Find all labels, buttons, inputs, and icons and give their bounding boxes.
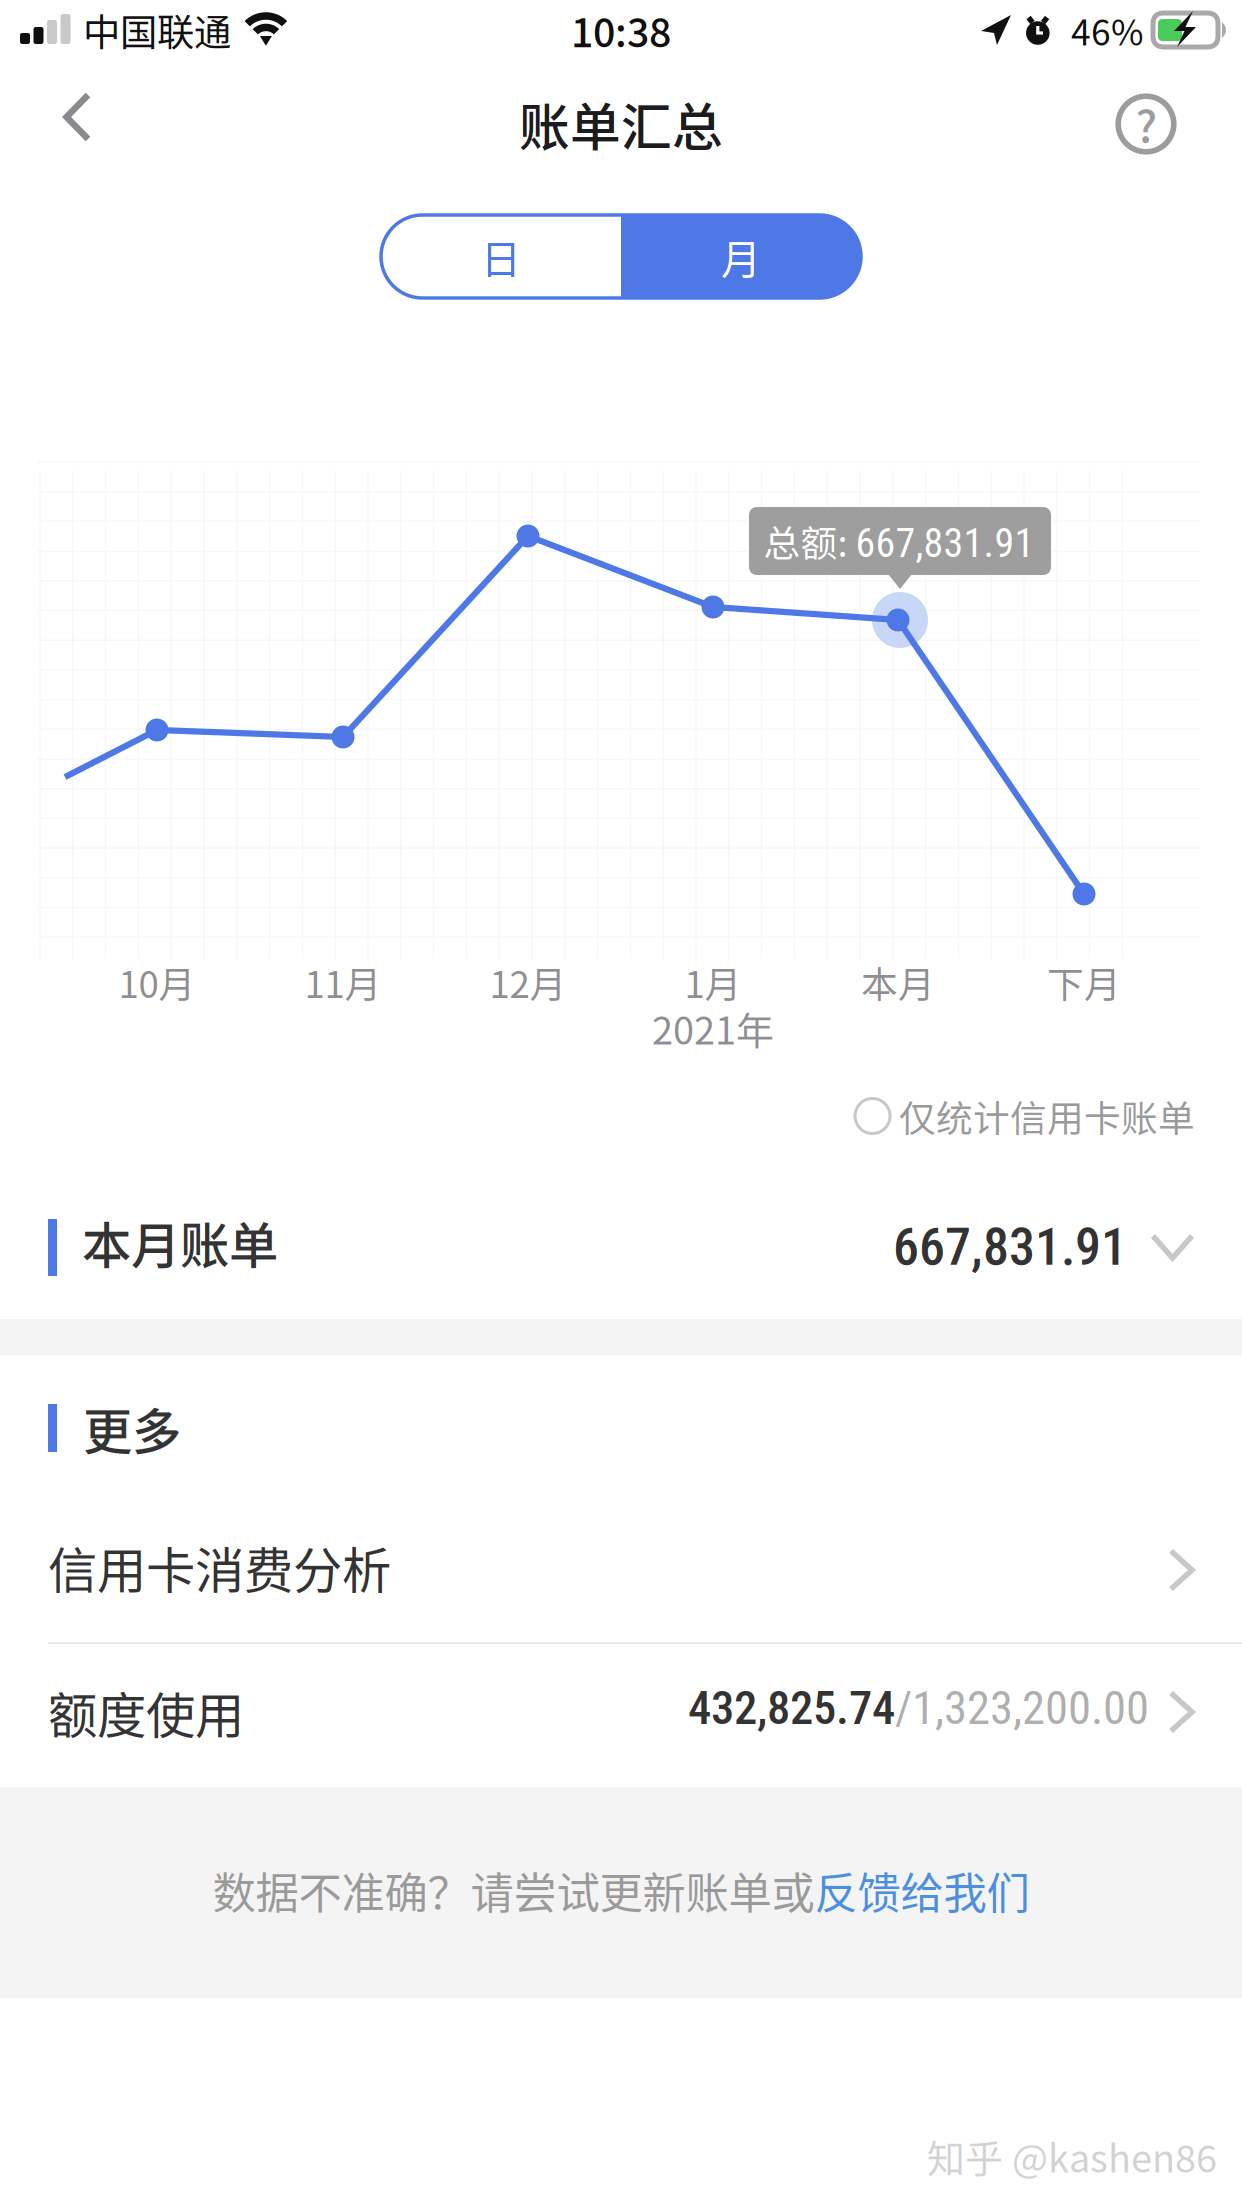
staticText: 本月账单 [82, 1206, 278, 1278]
button[interactable]: 额度使用 [0, 1664, 1242, 1760]
staticText: 总额: [763, 514, 855, 568]
staticText: 月 [721, 227, 761, 285]
staticText: /1,323,200.00 [895, 1681, 1149, 1735]
staticText: 中国联通 [83, 3, 231, 57]
staticText: 667,831.91 [855, 520, 1034, 567]
button[interactable]: 本月账单 [0, 1197, 1242, 1297]
button[interactable]: 仅统计信用卡账单 [845, 1078, 1195, 1154]
button[interactable]: 信用卡消费分析 [0, 1522, 1242, 1618]
staticText: 下月 [1047, 955, 1121, 1009]
button[interactable]: Help [1086, 64, 1206, 184]
staticText: 知乎 @kashen86 [927, 2128, 1217, 2183]
staticText: 仅统计信用卡账单 [899, 1089, 1195, 1143]
staticText: 数据不准确？请尝试更新账单或 [212, 1859, 814, 1921]
button[interactable]: 日 [381, 215, 621, 298]
staticText: 额度使用 [48, 1676, 244, 1748]
staticText: 11月 [304, 955, 381, 1009]
staticText: 本月 [861, 955, 935, 1009]
staticText: 46% [1071, 4, 1144, 56]
staticText: 账单汇总 [519, 87, 723, 161]
staticText: ? [1135, 91, 1157, 155]
button[interactable]: Back [18, 60, 136, 174]
staticText: 12月 [489, 955, 566, 1009]
staticText: 432,825.74 [688, 1681, 895, 1735]
staticText: 2021年 [652, 1000, 774, 1055]
button[interactable]: 反馈给我们 [814, 1859, 1029, 1921]
staticText: 667,831.91 [893, 1216, 1127, 1277]
staticText: 日 [481, 227, 521, 285]
staticText: 10月 [118, 955, 195, 1009]
staticText: 信用卡消费分析 [48, 1531, 391, 1603]
staticText: 更多 [83, 1392, 181, 1464]
staticText: 10:38 [571, 1, 671, 58]
staticText: 1月 [684, 955, 741, 1009]
staticText: 反馈给我们 [814, 1859, 1029, 1921]
button[interactable]: 月 [621, 215, 861, 298]
